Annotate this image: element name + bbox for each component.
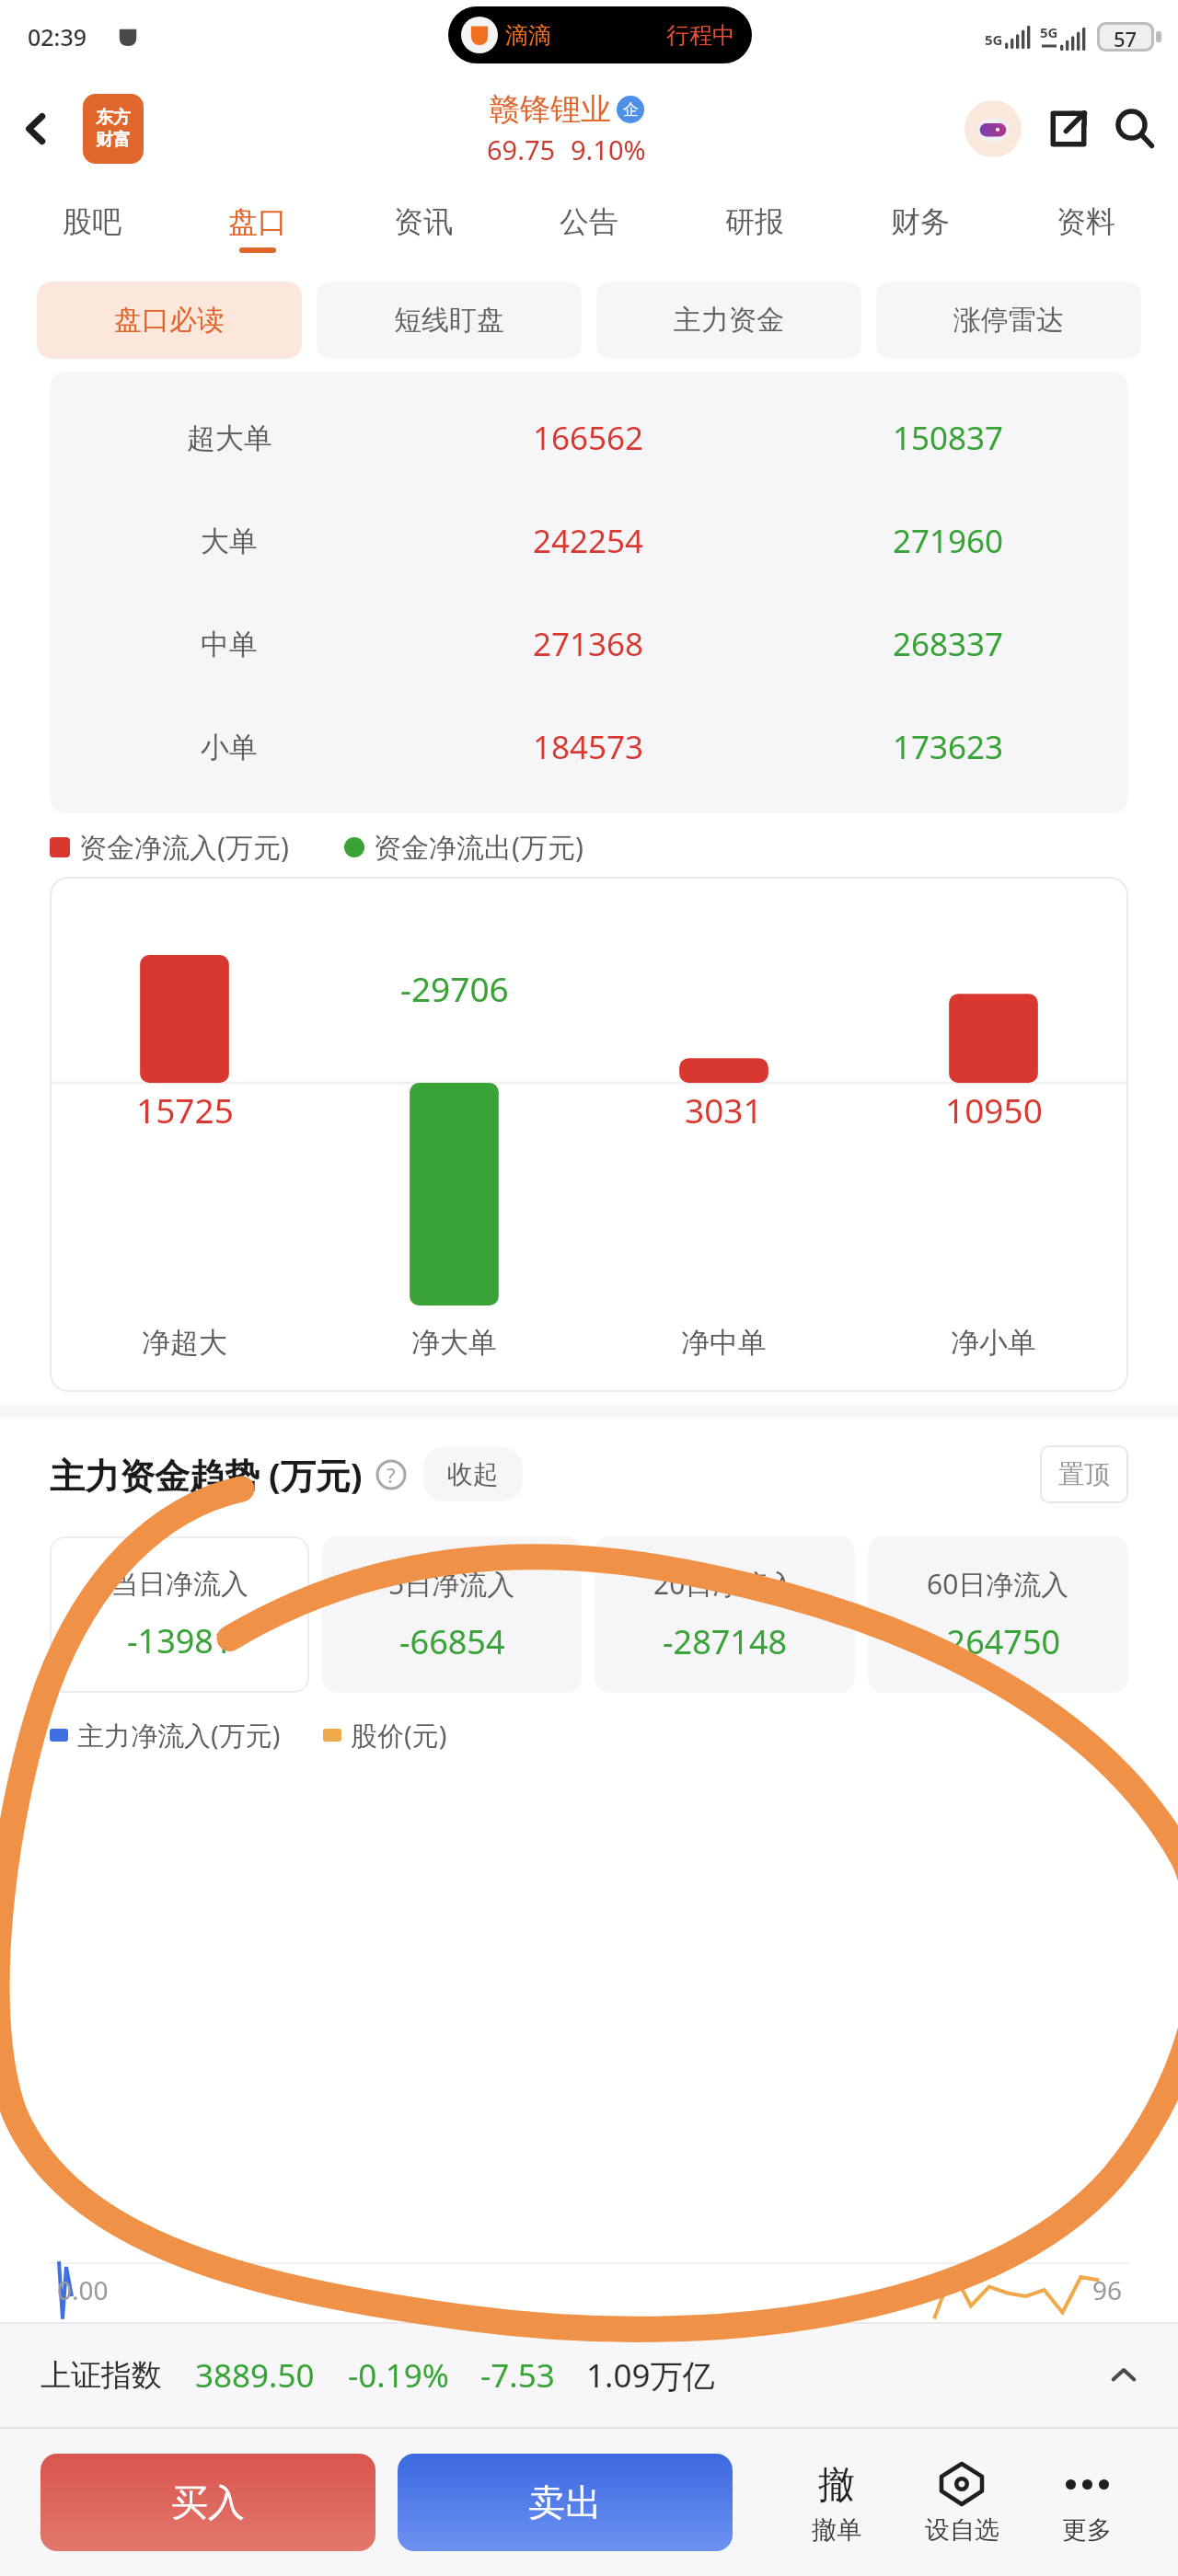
button[interactable]: 收起	[423, 1447, 523, 1501]
staticText: 小单	[201, 730, 258, 765]
staticText: 行程中	[666, 21, 735, 50]
button[interactable]: 公告	[552, 198, 626, 259]
staticText: 271960	[893, 519, 1004, 563]
staticText: -0.19%	[348, 2353, 449, 2398]
button[interactable]: 5日净流入	[322, 1536, 582, 1693]
button[interactable]: 研报	[718, 198, 791, 259]
button[interactable]: 主力资金	[596, 282, 861, 359]
button[interactable]: Help	[374, 1457, 409, 1492]
button[interactable]: 卖出	[398, 2454, 733, 2551]
staticText: -7.53	[480, 2353, 555, 2398]
staticText: 184573	[533, 725, 644, 769]
button[interactable]: 置顶	[1040, 1445, 1128, 1503]
staticText: 股吧	[63, 203, 121, 240]
button[interactable]: 更多	[1036, 2455, 1138, 2549]
staticText: 242254	[533, 519, 644, 563]
staticText: ?	[387, 1461, 396, 1489]
button[interactable]: 涨停雷达	[876, 282, 1141, 359]
staticText: 财务	[891, 203, 950, 240]
staticText: 财富	[96, 129, 131, 151]
staticText: 主力资金趋势 (万元)	[50, 1451, 363, 1499]
staticText: 净大单	[411, 1325, 497, 1361]
staticText: 更多	[1062, 2514, 1112, 2546]
staticText: 268337	[893, 622, 1004, 666]
button[interactable]: Assistant	[964, 100, 1022, 157]
staticText: 大单	[201, 523, 258, 559]
button[interactable]: 设自选	[911, 2455, 1012, 2549]
staticText: 上证指数	[40, 2356, 162, 2395]
staticText: 当日净流入	[110, 1567, 248, 1602]
staticText: 设自选	[925, 2514, 999, 2546]
button[interactable]: 资讯	[387, 198, 460, 259]
staticText: 撤	[818, 2461, 855, 2507]
staticText: 150837	[893, 416, 1004, 460]
staticText: 滴滴	[505, 21, 551, 50]
staticText: 资讯	[394, 203, 453, 240]
staticText: 15725	[136, 1087, 234, 1133]
staticText: 10950	[945, 1087, 1043, 1133]
staticText: 主力资金	[674, 303, 784, 338]
staticText: 买入	[171, 2479, 245, 2525]
staticText: 资金净流出(万元)	[374, 828, 583, 866]
staticText: 3031	[685, 1087, 763, 1133]
staticText: 净小单	[951, 1325, 1036, 1361]
staticText: 资金净流入(万元)	[79, 828, 289, 866]
staticText: 166562	[533, 416, 644, 460]
staticText: 置顶	[1058, 1458, 1110, 1490]
staticText: 盘口	[228, 203, 287, 240]
staticText: 企	[623, 100, 639, 120]
staticText: 60日净流入	[927, 1565, 1069, 1603]
button[interactable]: 东方财富	[83, 94, 144, 164]
staticText: 5日净流入	[388, 1565, 515, 1603]
staticText: 57	[1114, 25, 1138, 49]
staticText: -264750	[936, 1619, 1061, 1664]
staticText: 9.10%	[571, 132, 646, 167]
staticText: 收起	[447, 1458, 499, 1490]
button[interactable]: 买入	[40, 2454, 375, 2551]
button[interactable]: 20日净流入	[595, 1536, 855, 1693]
staticText: 中单	[201, 627, 258, 662]
staticText: 赣锋锂业	[490, 90, 611, 129]
staticText: 超大单	[187, 420, 272, 456]
staticText: 撤单	[812, 2514, 861, 2546]
staticText: 东方	[96, 107, 131, 129]
staticText: 5G	[985, 30, 1003, 49]
staticText: -29706	[400, 965, 509, 1011]
button[interactable]: 上证指数	[0, 2324, 1178, 2427]
staticText: 短线盯盘	[394, 303, 504, 338]
button[interactable]: 60日净流入	[868, 1536, 1128, 1693]
staticText: 股价(元)	[351, 1717, 447, 1754]
button[interactable]: 财务	[883, 198, 957, 259]
button[interactable]: 股吧	[55, 198, 129, 259]
button[interactable]: Back	[13, 106, 59, 152]
staticText: 96	[1092, 2272, 1123, 2307]
staticText: 173623	[893, 725, 1004, 769]
staticText: 3889.50	[195, 2353, 315, 2398]
staticText: 69.75	[487, 132, 556, 167]
button[interactable]: 资料	[1049, 198, 1123, 259]
staticText: 0.00	[57, 2272, 109, 2307]
button[interactable]: 撤	[786, 2455, 887, 2549]
button[interactable]: 盘口必读	[37, 282, 302, 359]
staticText: 研报	[725, 203, 784, 240]
staticText: 净超大	[142, 1325, 227, 1361]
button[interactable]: Search	[1110, 104, 1160, 154]
staticText: 卖出	[528, 2479, 602, 2525]
staticText: 02:39	[28, 21, 87, 52]
staticText: 主力净流入(万元)	[77, 1717, 281, 1754]
button[interactable]: Share	[1044, 104, 1093, 154]
button[interactable]: 当日净流入	[50, 1536, 309, 1693]
staticText: -66854	[399, 1619, 505, 1664]
staticText: 盘口必读	[114, 303, 225, 338]
staticText: 资料	[1057, 203, 1115, 240]
staticText: -287148	[663, 1619, 788, 1664]
staticText: 公告	[560, 203, 618, 240]
button[interactable]: 短线盯盘	[317, 282, 582, 359]
staticText: 涨停雷达	[953, 303, 1064, 338]
button[interactable]: 盘口	[221, 198, 294, 259]
staticText: 20日净流入	[653, 1565, 796, 1603]
staticText: -13981	[127, 1618, 233, 1663]
staticText: 1.09万亿	[586, 2353, 715, 2398]
staticText: 5G	[1040, 23, 1058, 41]
staticText: 271368	[533, 622, 644, 666]
